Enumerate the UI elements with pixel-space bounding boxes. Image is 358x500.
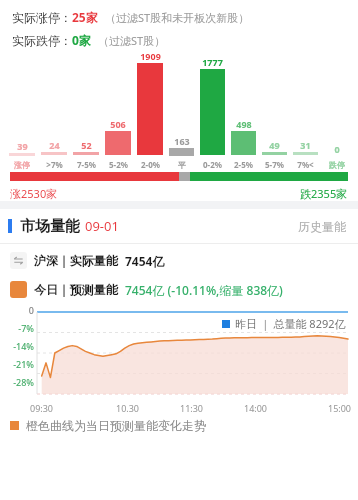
staticText: （过滤ST股和未开板次新股） <box>105 10 250 25</box>
staticText: 163 <box>174 135 190 147</box>
staticText: 昨日 ｜ 总量能 8292亿 <box>235 316 346 331</box>
staticText: 7%< <box>297 159 314 170</box>
other: 沪深 <box>10 252 27 269</box>
staticText: 0 <box>28 304 34 316</box>
staticText: 7454亿 <box>125 253 165 269</box>
staticText: 涨停 <box>14 160 30 170</box>
staticText: 15:00 <box>328 402 352 414</box>
staticText: -28% <box>13 376 34 388</box>
staticText: 平 <box>178 160 186 170</box>
staticText: 市场量能 <box>20 217 80 236</box>
staticText: 31 <box>300 139 311 151</box>
staticText: 14:00 <box>244 402 268 414</box>
staticText: 历史量能 <box>298 219 346 234</box>
staticText: 506 <box>110 118 126 130</box>
staticText: >7% <box>46 159 63 170</box>
staticText: 10.30 <box>116 402 140 414</box>
staticText: 1909 <box>140 50 161 62</box>
staticText: 09:30 <box>30 402 54 414</box>
staticText: 实际涨停： <box>12 10 72 25</box>
button[interactable]: 历史量能 <box>298 219 346 234</box>
staticText: 1777 <box>202 56 223 68</box>
staticText: 沪深｜实际量能 <box>34 253 118 268</box>
staticText: -7% <box>18 322 34 334</box>
staticText: 49 <box>269 139 280 151</box>
staticText: 2-0% <box>141 159 160 170</box>
staticText: 今日｜预测量能 <box>34 282 118 297</box>
staticText: 11:30 <box>180 402 204 414</box>
staticText: 39 <box>17 140 28 152</box>
staticText: 7-5% <box>77 159 96 170</box>
staticText: 橙色曲线为当日预测量能变化走势 <box>26 418 206 433</box>
staticText: 24 <box>49 139 60 151</box>
staticText: 52 <box>81 139 92 151</box>
staticText: 25家 <box>72 9 98 25</box>
staticText: 0-2% <box>203 159 222 170</box>
staticText: 2-5% <box>234 159 253 170</box>
staticText: 5-7% <box>265 159 284 170</box>
staticText: 0家 <box>72 32 91 48</box>
staticText: -21% <box>13 358 34 370</box>
staticText: 跌停 <box>329 160 345 170</box>
staticText: 7454亿 (-10.11%,缩量 838亿) <box>125 282 283 298</box>
staticText: 09-01 <box>85 217 119 235</box>
staticText: 实际跌停： <box>12 33 72 48</box>
staticText: 涨2530家 <box>10 186 58 201</box>
staticText: 0 <box>334 143 340 155</box>
staticText: 跌2355家 <box>300 186 348 201</box>
staticText: 5-2% <box>109 159 128 170</box>
staticText: 498 <box>236 118 252 130</box>
staticText: （过滤ST股） <box>98 33 166 48</box>
staticText: -14% <box>13 340 34 352</box>
